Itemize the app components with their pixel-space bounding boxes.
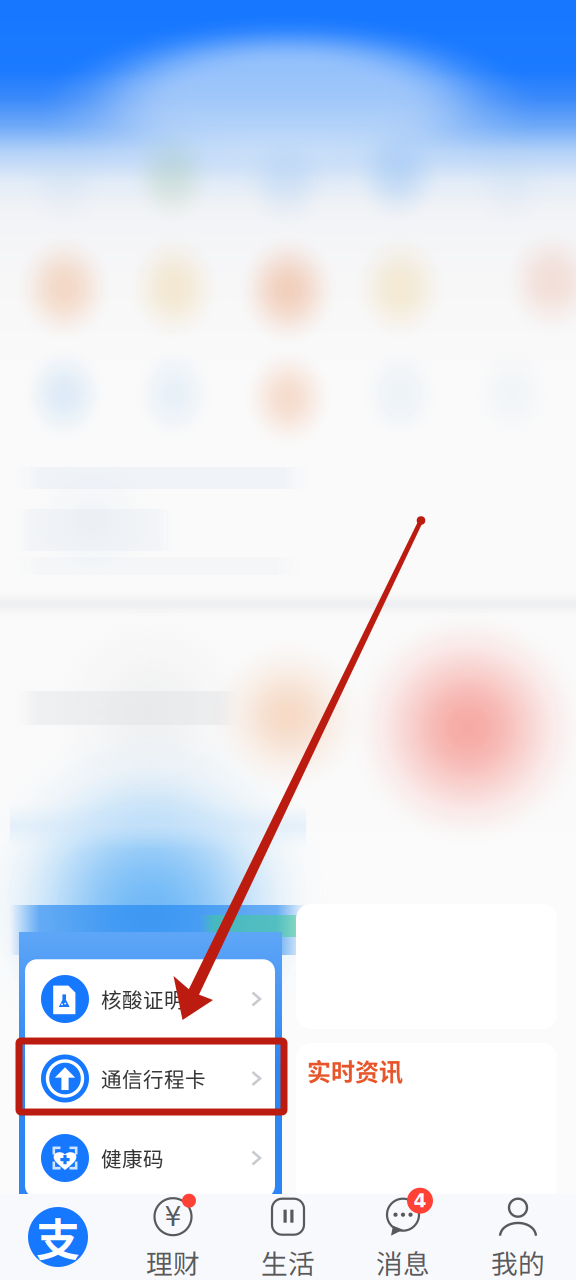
staticText: 理财 xyxy=(146,1243,200,1280)
button[interactable]: 我的 xyxy=(460,1194,575,1280)
button[interactable]: 4 xyxy=(345,1194,460,1280)
staticText: 4 xyxy=(413,1190,426,1211)
staticText: 生活 xyxy=(261,1243,315,1280)
staticText: 支 xyxy=(36,1205,80,1269)
staticText: 消息 xyxy=(376,1243,430,1280)
button[interactable]: 生活 xyxy=(230,1194,345,1280)
staticText: 通信行程卡 xyxy=(101,1064,206,1093)
staticText: 实时资讯 xyxy=(307,1053,403,1088)
staticText: ¥ xyxy=(164,1201,181,1232)
button[interactable]: 通信行程卡 xyxy=(25,1039,275,1118)
button[interactable]: 核酸证明 xyxy=(25,959,275,1039)
staticText: 我的 xyxy=(491,1243,545,1280)
button[interactable]: ¥ xyxy=(115,1194,230,1280)
button[interactable]: Alipay Home xyxy=(0,1194,115,1280)
staticText: 健康码 xyxy=(101,1143,164,1173)
staticText: 核酸证明 xyxy=(101,984,185,1014)
button[interactable]: 健康码 xyxy=(25,1118,275,1198)
